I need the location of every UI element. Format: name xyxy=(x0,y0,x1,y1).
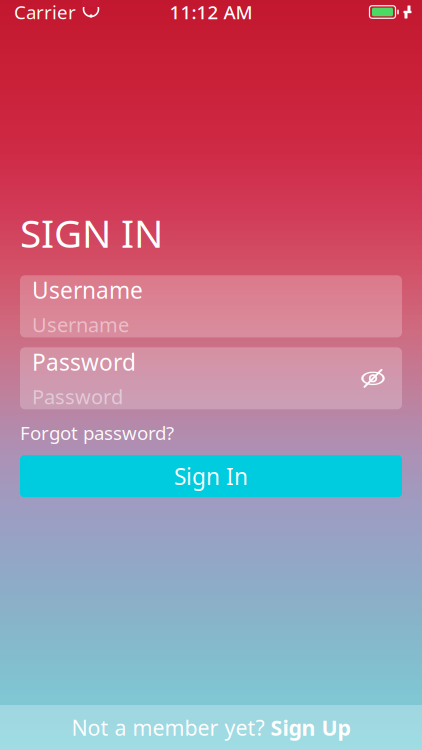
button[interactable]: Show password xyxy=(354,360,392,396)
staticText: Carrier xyxy=(14,0,76,24)
button[interactable]: Forgot password? xyxy=(20,420,174,445)
staticText: Password xyxy=(32,383,123,410)
staticText: Username xyxy=(32,311,129,338)
staticText: Not a member yet? xyxy=(71,713,264,742)
staticText: SIGN IN xyxy=(20,207,163,258)
staticText: Username xyxy=(32,275,143,305)
staticText: Sign Up xyxy=(270,713,350,742)
staticText: Sign In xyxy=(174,461,248,491)
staticText: Password xyxy=(32,347,136,377)
staticText: Forgot password? xyxy=(20,420,174,445)
button[interactable]: Not a member yet? xyxy=(0,705,422,750)
staticText: 11:12 AM xyxy=(169,0,252,24)
button[interactable]: Sign In xyxy=(20,455,402,497)
